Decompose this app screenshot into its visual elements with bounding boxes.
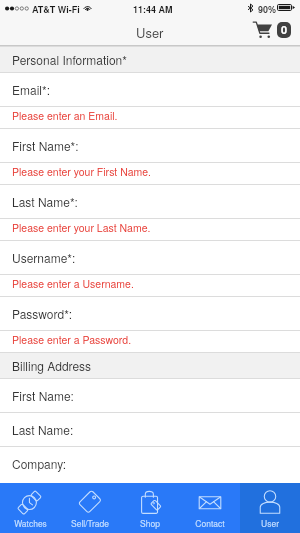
staticText: Last Name: bbox=[12, 421, 74, 438]
button[interactable]: Sell/Trade bbox=[60, 483, 120, 533]
staticText: Company: bbox=[12, 455, 67, 472]
staticText: Please enter a Password. bbox=[12, 332, 132, 347]
button[interactable]: Company: bbox=[0, 447, 300, 480]
button[interactable]: Username*: bbox=[0, 241, 300, 274]
staticText: 11:44 AM bbox=[133, 3, 173, 16]
staticText: User bbox=[261, 517, 279, 529]
staticText: AT&T Wi-Fi bbox=[32, 3, 80, 16]
staticText: Please enter your First Name. bbox=[12, 164, 152, 179]
staticText: First Name*: bbox=[12, 137, 79, 154]
staticText: Last Name*: bbox=[12, 193, 78, 210]
button[interactable]: Last Name: bbox=[0, 413, 300, 446]
staticText: First Name: bbox=[12, 387, 74, 404]
button[interactable]: User bbox=[240, 483, 300, 533]
staticText: Password*: bbox=[12, 305, 73, 322]
staticText: Contact bbox=[195, 517, 225, 529]
button[interactable]: Password*: bbox=[0, 297, 300, 330]
staticText: Sell/Trade bbox=[71, 517, 109, 529]
staticText: Watches bbox=[14, 517, 47, 529]
staticText: Please enter an Email. bbox=[12, 108, 118, 123]
staticText: Username*: bbox=[12, 249, 76, 266]
staticText: 0 bbox=[281, 22, 288, 38]
staticText: 90% bbox=[258, 3, 277, 16]
button[interactable]: Contact bbox=[180, 483, 240, 533]
staticText: Shop bbox=[140, 517, 160, 529]
button[interactable]: Shop bbox=[120, 483, 180, 533]
staticText: Personal Information* bbox=[12, 51, 127, 68]
staticText: Please enter your Last Name. bbox=[12, 220, 151, 235]
button[interactable]: Email*: bbox=[0, 73, 300, 106]
button[interactable]: First Name: bbox=[0, 379, 300, 412]
staticText: Email*: bbox=[12, 81, 51, 98]
staticText: Please enter a Username. bbox=[12, 276, 134, 291]
button[interactable]: First Name*: bbox=[0, 129, 300, 162]
button[interactable]: Watches bbox=[0, 483, 60, 533]
button[interactable]: Last Name*: bbox=[0, 185, 300, 218]
staticText: Billing Address bbox=[12, 357, 92, 374]
button[interactable]: Shopping cart, 0 items bbox=[253, 21, 291, 38]
staticText: User bbox=[136, 23, 164, 42]
